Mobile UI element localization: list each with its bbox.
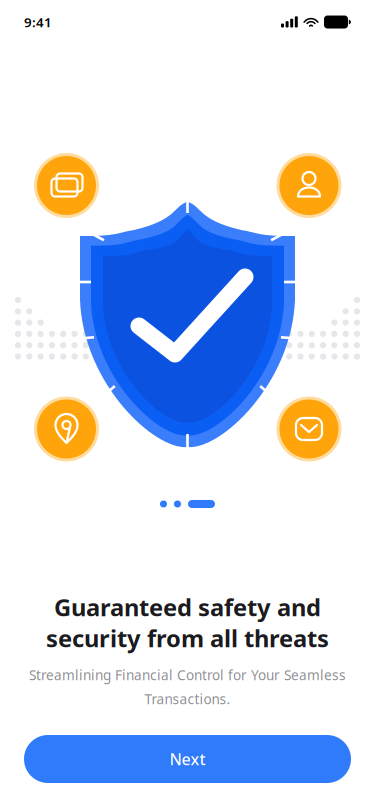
staticText: Guaranteed safety and: [54, 591, 321, 623]
staticText: 9:41: [24, 13, 52, 31]
button[interactable]: Profile: [276, 153, 341, 218]
staticText: Streamlining Financial Control for Your …: [29, 666, 346, 684]
button[interactable]: Next: [24, 735, 351, 783]
staticText: Next: [169, 748, 205, 770]
staticText: security from all threats: [46, 622, 329, 654]
button[interactable]: Messages: [276, 396, 341, 461]
button[interactable]: Location: [34, 396, 99, 461]
button[interactable]: Cards: [34, 153, 99, 218]
staticText: Transactions.: [144, 690, 230, 708]
